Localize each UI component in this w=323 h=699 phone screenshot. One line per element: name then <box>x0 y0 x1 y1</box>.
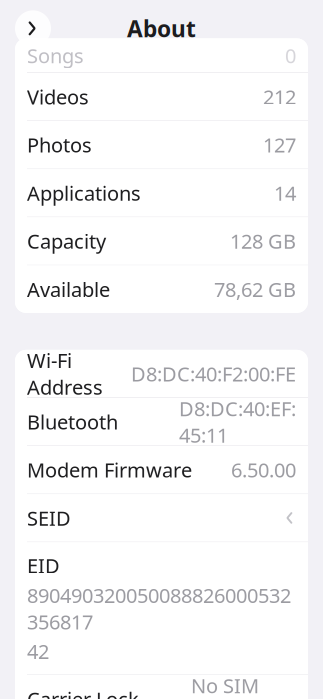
button[interactable]: Videos <box>15 73 308 120</box>
staticText: EID <box>27 552 60 579</box>
staticText: About <box>127 13 196 43</box>
staticText: 0 <box>285 42 296 69</box>
button[interactable]: EID <box>15 542 308 674</box>
staticText: 78,62 GB <box>214 276 296 302</box>
button[interactable]: Wi-Fi Address <box>15 350 308 397</box>
staticText: 42 <box>27 638 49 665</box>
button[interactable]: SEID <box>15 494 308 542</box>
staticText: Videos <box>27 83 89 110</box>
button[interactable]: Back <box>11 6 55 50</box>
staticText: D8:DC:40:F2:00:FE <box>131 360 296 387</box>
staticText: 14 <box>274 180 296 206</box>
staticText: Available <box>27 276 110 302</box>
staticText: D8:DC:40:EF:45:11 <box>179 395 296 448</box>
staticText: 128 GB <box>230 228 296 254</box>
button[interactable]: Modem Firmware <box>15 446 308 494</box>
staticText: 890490320050088826000532356817 <box>27 582 291 635</box>
staticText: Carrier Lock <box>27 686 139 699</box>
staticText: Photos <box>27 132 92 158</box>
button[interactable]: Available <box>15 265 308 313</box>
staticText: Wi-Fi Address <box>27 347 103 400</box>
staticText: Capacity <box>27 228 106 254</box>
staticText: 6.50.00 <box>231 457 296 483</box>
staticText: 127 <box>263 132 296 158</box>
staticText: SEID <box>27 505 71 531</box>
staticText: Bluetooth <box>27 408 118 435</box>
button[interactable]: Applications <box>15 169 308 217</box>
staticText: Applications <box>27 180 141 206</box>
staticText: Modem Firmware <box>27 457 192 483</box>
button[interactable]: Carrier Lock <box>15 675 308 699</box>
button[interactable]: Photos <box>15 121 308 169</box>
staticText: Songs <box>27 42 84 69</box>
button[interactable]: Bluetooth <box>15 398 308 445</box>
button[interactable]: Capacity <box>15 217 308 265</box>
staticText: No SIM restrictions <box>191 672 296 699</box>
staticText: 212 <box>263 83 296 110</box>
